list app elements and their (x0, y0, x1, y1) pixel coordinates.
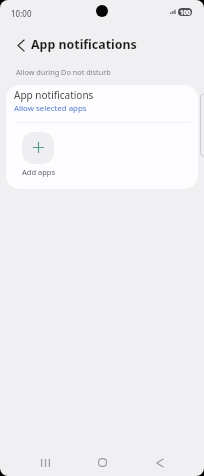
staticText: Allow selected apps (14, 103, 87, 114)
staticText: Add apps (22, 167, 55, 177)
staticText: Allow during Do not disturb (16, 67, 111, 77)
staticText: 10:00 (11, 8, 32, 19)
button[interactable]: Back (143, 446, 176, 476)
staticText: App notifications (14, 88, 94, 102)
staticText: 100 (180, 8, 191, 16)
button[interactable]: Home (86, 446, 119, 476)
button[interactable]: Add apps (16, 132, 60, 177)
button[interactable]: Back (8, 33, 32, 57)
staticText: App notifications (31, 36, 137, 53)
button[interactable]: Recent apps (29, 446, 62, 476)
